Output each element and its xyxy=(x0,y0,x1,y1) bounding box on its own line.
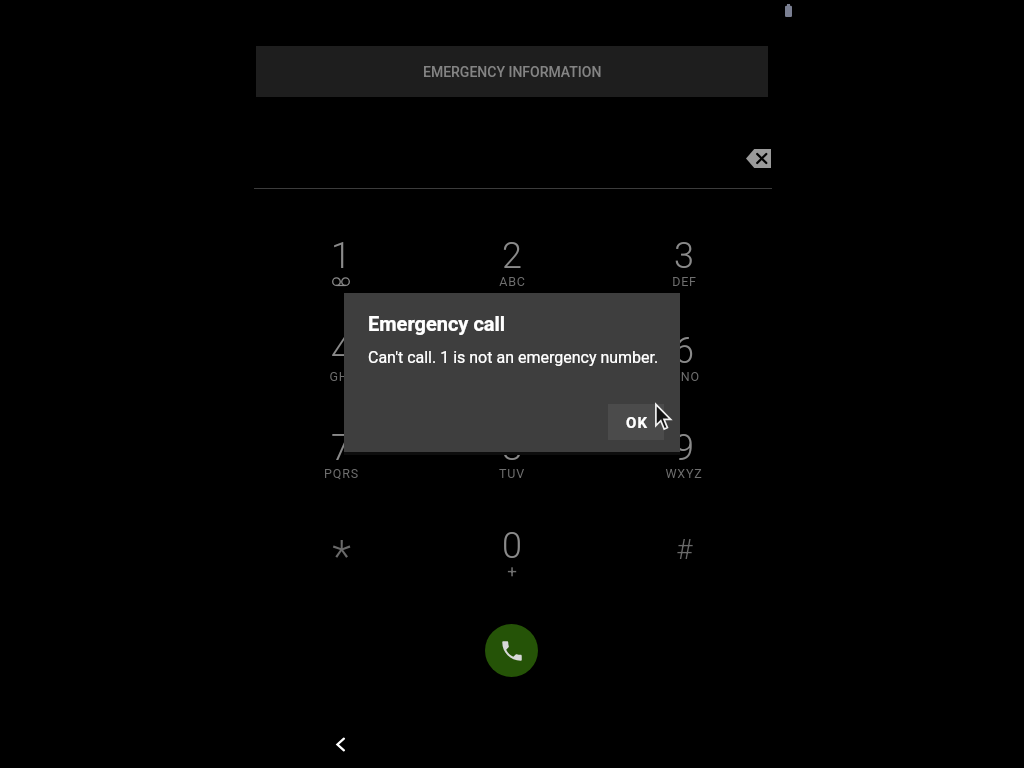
staticText: PQRS xyxy=(324,466,359,481)
staticText: 5 xyxy=(502,330,522,372)
button[interactable]: Call xyxy=(485,624,538,677)
staticText: EMERGENCY INFORMATION xyxy=(423,64,602,80)
staticText: # xyxy=(676,533,693,566)
button[interactable] xyxy=(427,406,597,501)
button[interactable]: OK xyxy=(608,404,664,440)
button[interactable] xyxy=(256,214,426,309)
staticText: OK xyxy=(626,414,649,432)
staticText: 6 xyxy=(674,330,694,372)
button[interactable] xyxy=(427,214,597,309)
button[interactable] xyxy=(599,504,769,599)
staticText: GHI xyxy=(329,369,353,384)
staticText: 7 xyxy=(331,427,351,469)
button[interactable] xyxy=(427,309,597,404)
staticText: * xyxy=(332,531,351,583)
staticText: TUV xyxy=(499,466,525,481)
staticText: + xyxy=(507,561,517,581)
button[interactable]: EMERGENCY INFORMATION xyxy=(256,46,768,97)
button[interactable] xyxy=(599,214,769,309)
button[interactable] xyxy=(599,406,769,501)
button[interactable]: Back xyxy=(316,720,364,768)
staticText: DEF xyxy=(672,274,697,289)
button[interactable] xyxy=(256,406,426,501)
staticText: 0 xyxy=(502,525,522,567)
button[interactable] xyxy=(427,504,597,599)
button[interactable] xyxy=(599,309,769,404)
staticText: ABC xyxy=(499,274,526,289)
button[interactable]: Delete xyxy=(738,138,778,178)
staticText: Emergency call xyxy=(368,312,506,335)
staticText: 9 xyxy=(674,427,694,469)
staticText: 8 xyxy=(502,427,522,469)
staticText: 4 xyxy=(331,330,351,372)
staticText: Can't call. 1 is not an emergency number… xyxy=(368,348,659,367)
staticText: 1 xyxy=(331,235,351,277)
button[interactable] xyxy=(256,309,426,404)
staticText: WXYZ xyxy=(665,466,703,481)
staticText: 3 xyxy=(674,235,694,277)
staticText: 2 xyxy=(502,235,522,277)
staticText: MNO xyxy=(669,369,700,384)
button[interactable] xyxy=(256,504,426,599)
